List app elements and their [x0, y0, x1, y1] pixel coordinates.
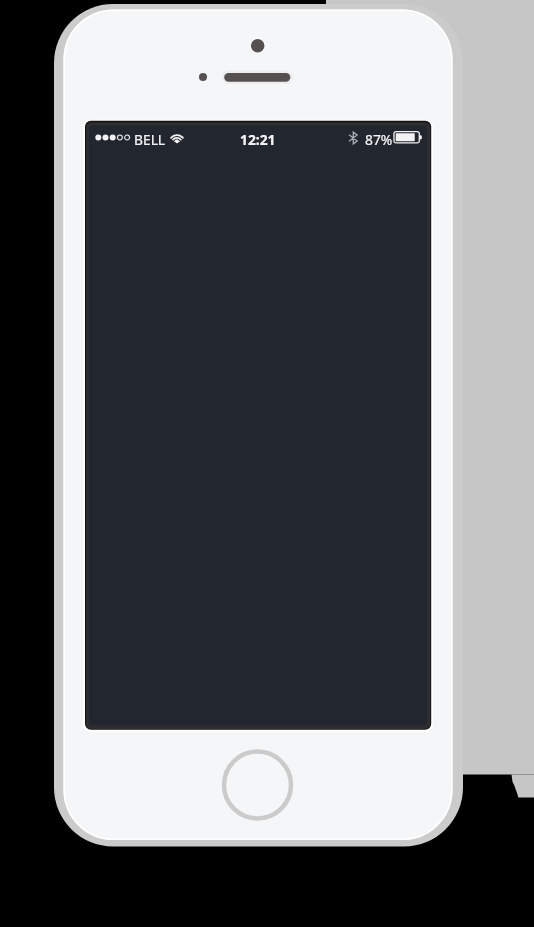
staticText: 87%: [365, 130, 393, 149]
staticText: BELL: [134, 130, 166, 149]
button[interactable]: Home: [222, 749, 293, 820]
staticText: 12:21: [240, 130, 276, 149]
